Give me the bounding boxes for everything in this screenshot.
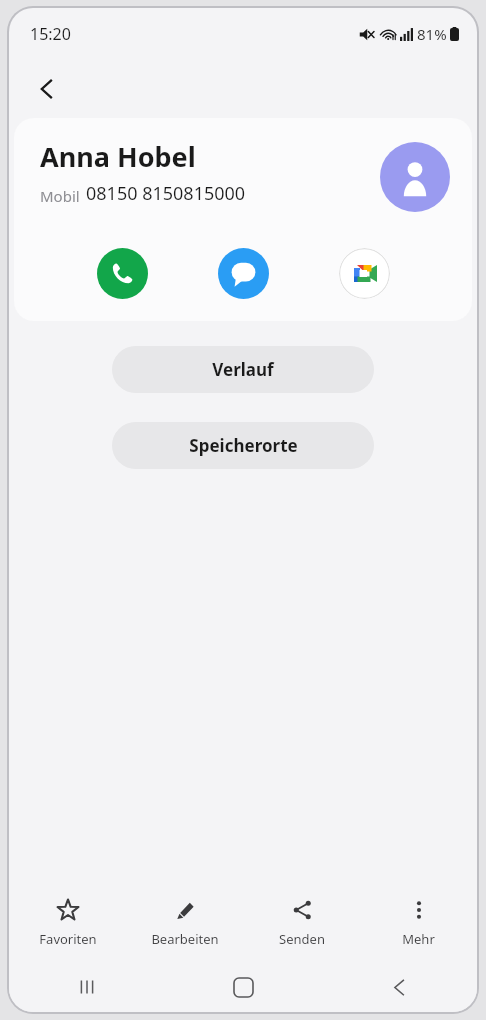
staticText: Mobil bbox=[40, 186, 80, 206]
button[interactable]: Senden bbox=[243, 884, 360, 962]
button[interactable]: Bearbeiten bbox=[126, 884, 243, 962]
staticText: Favoriten bbox=[39, 930, 97, 948]
staticText: Verlauf bbox=[212, 358, 274, 381]
button[interactable]: Back bbox=[23, 65, 71, 113]
button[interactable]: Favoriten bbox=[9, 884, 126, 962]
staticText: Senden bbox=[279, 930, 325, 948]
button[interactable]: Mehr bbox=[360, 884, 477, 962]
button[interactable]: Verlauf bbox=[112, 346, 374, 393]
button[interactable]: Call bbox=[97, 248, 148, 299]
staticText: Mehr bbox=[402, 930, 435, 948]
staticText: Bearbeiten bbox=[151, 930, 219, 948]
button[interactable]: Message bbox=[218, 248, 269, 299]
button[interactable]: Home bbox=[165, 962, 321, 1012]
button[interactable]: Video call bbox=[339, 248, 390, 299]
staticText: 08150 8150815000 bbox=[86, 181, 246, 206]
staticText: Speicherorte bbox=[189, 434, 298, 457]
button[interactable]: Recent apps bbox=[9, 962, 165, 1012]
staticText: 15:20 bbox=[30, 23, 71, 45]
staticText: Anna Hobel bbox=[40, 138, 196, 175]
button[interactable]: Back bbox=[321, 962, 477, 1012]
staticText: 81% bbox=[417, 24, 447, 44]
button[interactable]: Contact photo bbox=[380, 142, 450, 212]
button[interactable]: Speicherorte bbox=[112, 422, 374, 469]
